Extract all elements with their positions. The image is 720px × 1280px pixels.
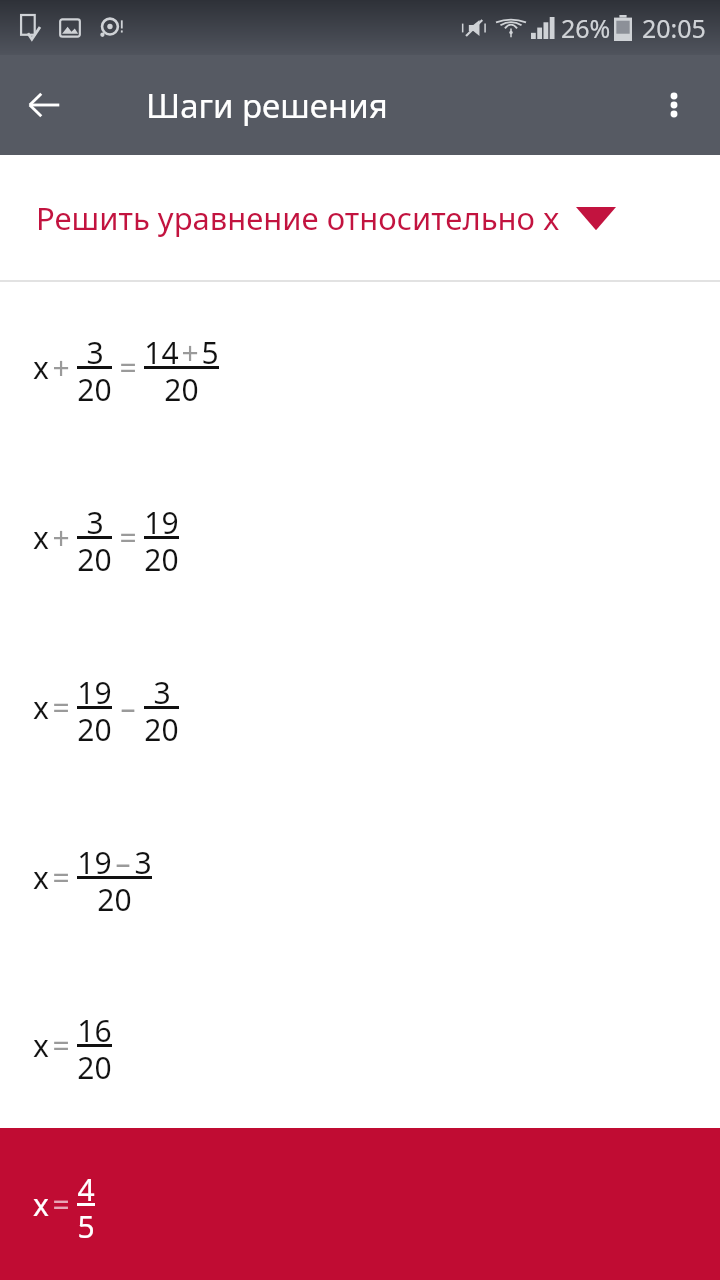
staticText: 19: [144, 502, 179, 536]
staticText: 19: [77, 672, 112, 706]
staticText: 3: [86, 502, 104, 536]
staticText: =: [50, 857, 72, 898]
staticText: +: [179, 332, 201, 366]
staticText: +: [50, 517, 72, 558]
staticText: 20:05: [642, 11, 706, 45]
staticText: 20: [77, 539, 112, 573]
button[interactable]: x: [0, 962, 720, 1128]
staticText: Решить уравнение относительно x: [36, 197, 560, 239]
staticText: x: [32, 1184, 50, 1225]
staticText: 20: [97, 879, 132, 913]
button[interactable]: Back: [8, 69, 80, 141]
staticText: 5: [201, 332, 219, 366]
staticText: 26%: [561, 11, 611, 45]
staticText: 14: [144, 332, 179, 366]
staticText: 3: [134, 842, 152, 876]
staticText: x: [32, 687, 50, 728]
staticText: =: [50, 687, 72, 728]
staticText: 20: [77, 1047, 112, 1081]
staticText: 20: [144, 539, 179, 573]
button[interactable]: x: [0, 622, 720, 792]
staticText: =: [117, 517, 139, 558]
staticText: Шаги решения: [146, 83, 388, 128]
staticText: x: [32, 1025, 50, 1066]
button[interactable]: x: [0, 282, 720, 452]
staticText: x: [32, 347, 50, 388]
staticText: +: [50, 347, 72, 388]
button[interactable]: x: [0, 1128, 720, 1280]
staticText: 3: [153, 672, 171, 706]
staticText: 20: [77, 369, 112, 403]
staticText: 20: [144, 709, 179, 743]
staticText: =: [50, 1025, 72, 1066]
staticText: x: [32, 857, 50, 898]
staticText: 19: [77, 842, 112, 876]
staticText: 4: [77, 1169, 95, 1203]
staticText: =: [117, 347, 139, 388]
staticText: x: [32, 517, 50, 558]
staticText: 20: [164, 369, 199, 403]
staticText: 3: [86, 332, 104, 366]
staticText: =: [50, 1184, 72, 1225]
button[interactable]: x: [0, 792, 720, 962]
button[interactable]: Решить уравнение относительно x: [0, 155, 720, 280]
staticText: 20: [77, 709, 112, 743]
button[interactable]: x: [0, 452, 720, 622]
staticText: 5: [77, 1206, 95, 1240]
button[interactable]: More options: [638, 69, 710, 141]
staticText: –: [112, 842, 134, 876]
staticText: –: [117, 687, 139, 728]
staticText: 16: [77, 1010, 112, 1044]
